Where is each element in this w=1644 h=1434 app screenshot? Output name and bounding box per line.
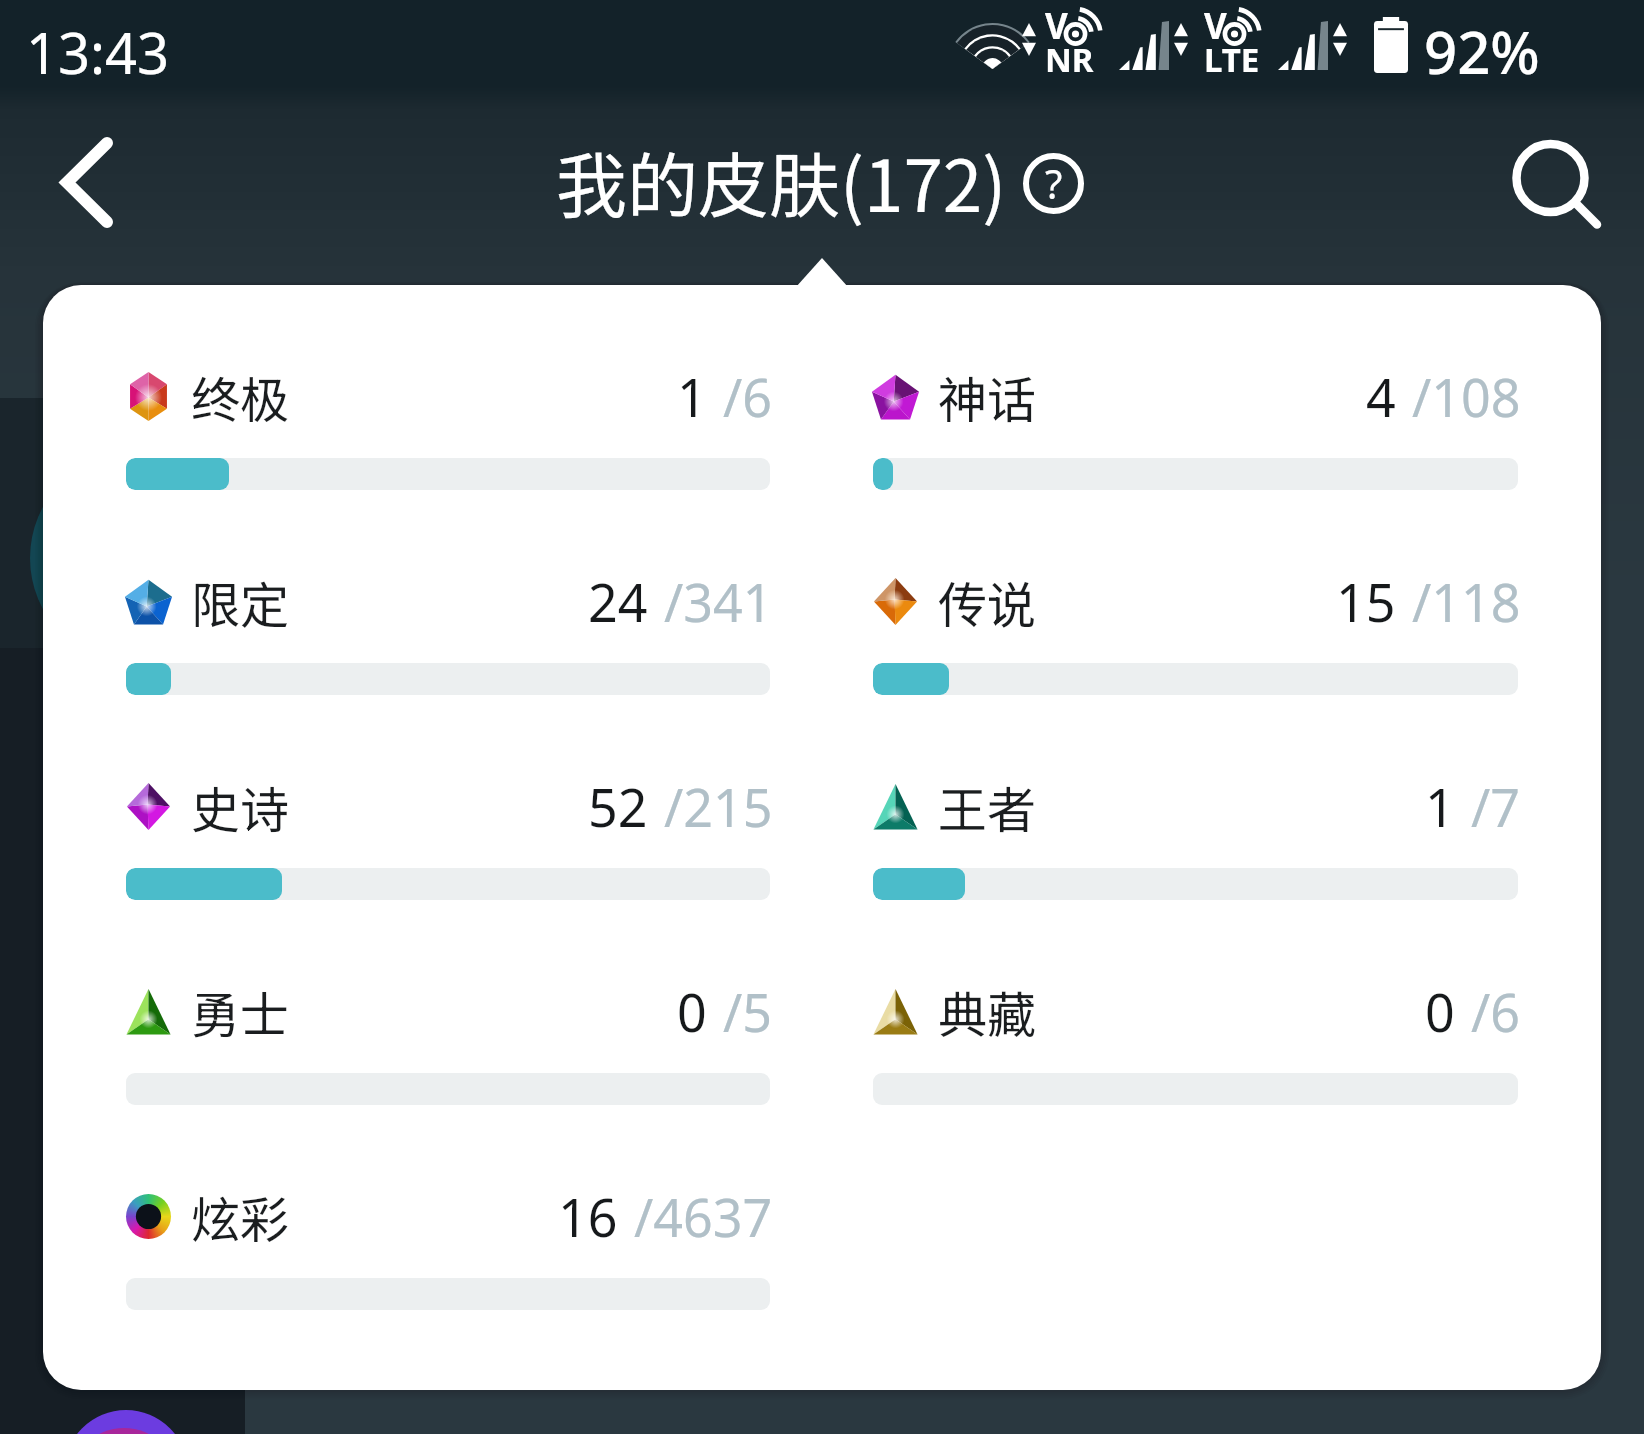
button[interactable]: 勇士 bbox=[126, 962, 770, 1106]
staticText: /341 bbox=[664, 566, 773, 637]
staticText: 13:43 bbox=[26, 14, 170, 90]
staticText: 限定 bbox=[191, 566, 290, 637]
staticText: 4 bbox=[1366, 361, 1396, 432]
staticText: 0 bbox=[1425, 976, 1455, 1047]
staticText: 史诗 bbox=[191, 771, 290, 842]
staticText: V bbox=[1204, 2, 1227, 50]
button[interactable]: 终极 bbox=[126, 347, 770, 491]
button[interactable]: 史诗 bbox=[126, 757, 770, 901]
staticText: /118 bbox=[1412, 566, 1521, 637]
staticText: /6 bbox=[723, 361, 773, 432]
staticText: 1 bbox=[677, 361, 707, 432]
button[interactable]: 典藏 bbox=[873, 962, 1518, 1106]
button[interactable]: 传说 bbox=[873, 552, 1518, 696]
staticText: /108 bbox=[1412, 361, 1521, 432]
staticText: 0 bbox=[677, 976, 707, 1047]
button[interactable]: Help bbox=[1023, 153, 1084, 214]
button[interactable]: 王者 bbox=[873, 757, 1518, 901]
staticText: 我的皮肤(172) bbox=[556, 130, 1007, 233]
staticText: LTE bbox=[1204, 37, 1260, 82]
button[interactable]: 炫彩 bbox=[126, 1167, 770, 1311]
staticText: 炫彩 bbox=[191, 1181, 290, 1252]
staticText: NR bbox=[1045, 37, 1094, 82]
staticText: 16 bbox=[558, 1181, 618, 1252]
staticText: /6 bbox=[1471, 976, 1521, 1047]
staticText: /4637 bbox=[634, 1181, 773, 1252]
staticText: /7 bbox=[1471, 771, 1521, 842]
staticText: 典藏 bbox=[938, 976, 1037, 1047]
staticText: 1 bbox=[1425, 771, 1455, 842]
staticText: 传说 bbox=[938, 566, 1037, 637]
staticText: 勇士 bbox=[191, 976, 290, 1047]
staticText: /5 bbox=[723, 976, 773, 1047]
staticText: 92% bbox=[1424, 12, 1540, 91]
staticText: 52 bbox=[588, 771, 648, 842]
staticText: /215 bbox=[664, 771, 773, 842]
staticText: V bbox=[1045, 2, 1068, 50]
staticText: 王者 bbox=[938, 771, 1037, 842]
button[interactable]: 神话 bbox=[873, 347, 1518, 491]
button[interactable]: Search bbox=[1490, 118, 1620, 248]
button[interactable]: Back bbox=[27, 117, 147, 248]
button[interactable]: 限定 bbox=[126, 552, 770, 696]
staticText: 神话 bbox=[938, 361, 1037, 432]
staticText: 终极 bbox=[191, 361, 290, 432]
staticText: ? bbox=[1045, 156, 1063, 210]
staticText: 15 bbox=[1336, 566, 1396, 637]
staticText: 24 bbox=[588, 566, 648, 637]
